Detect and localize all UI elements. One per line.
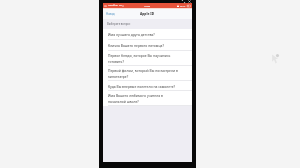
button[interactable]: Первое блюдо, которое Вы научились готов… bbox=[103, 51, 192, 66]
staticText: Кличка Вашего первого питомца? bbox=[108, 43, 164, 48]
button[interactable]: Куда Вы впервые полетели на самолете? bbox=[103, 81, 192, 91]
staticText: Имя лучшего друга детства? bbox=[108, 32, 155, 37]
button[interactable]: Имя лучшего друга детства? bbox=[103, 29, 192, 40]
button[interactable]: Первый фильм, который Вы посмотрели в ки… bbox=[103, 66, 192, 81]
button[interactable]: Кличка Вашего первого питомца? bbox=[103, 40, 192, 51]
button[interactable]: Fullscreen bbox=[182, 0, 185, 3]
staticText: Apple ID bbox=[140, 12, 154, 16]
staticText: 18:06 bbox=[144, 4, 151, 7]
staticText: Первый фильм, который Вы посмотрели в ки… bbox=[108, 68, 181, 79]
button[interactable]: Имя Вашего любимого учителя в начальной … bbox=[103, 91, 192, 106]
staticText: Назад bbox=[106, 12, 115, 16]
staticText: Выберите вопрос bbox=[107, 22, 131, 26]
staticText: 3G bbox=[119, 4, 122, 7]
staticText: Первое блюдо, которое Вы научились готов… bbox=[108, 53, 181, 64]
staticText: Куда Вы впервые полетели на самолете? bbox=[108, 84, 176, 89]
staticText: 47 % bbox=[180, 4, 186, 7]
staticText: Имя Вашего любимого учителя в начальной … bbox=[108, 93, 181, 104]
button[interactable]: Close bbox=[188, 0, 191, 3]
button[interactable]: Назад bbox=[103, 8, 118, 19]
staticText: МегаФон bbox=[108, 4, 118, 7]
